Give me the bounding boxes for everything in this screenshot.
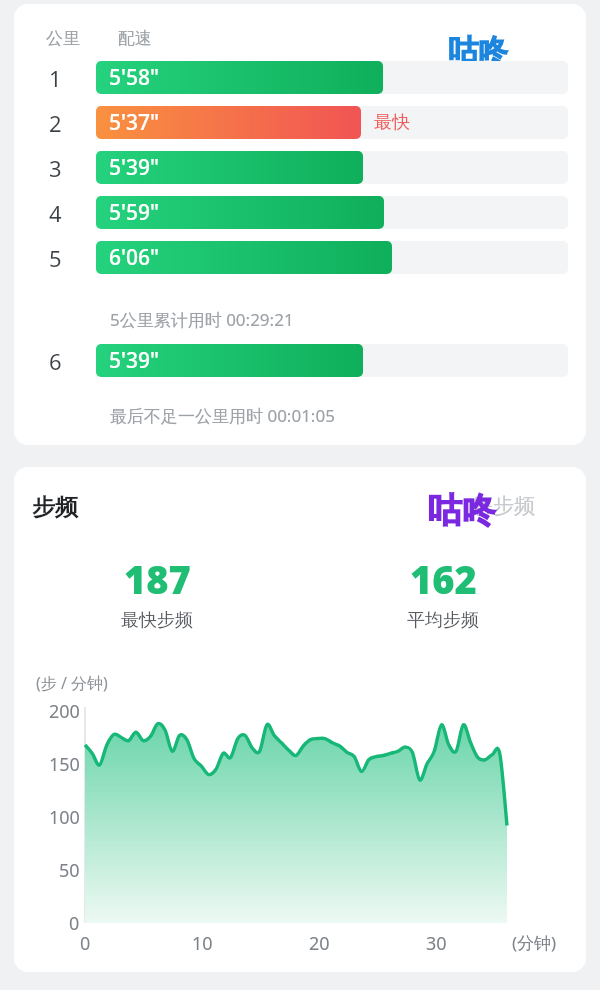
staticText: 2: [49, 108, 62, 138]
button[interactable]: 4: [14, 190, 586, 235]
button[interactable]: 3: [14, 145, 586, 190]
staticText: 咕咚: [448, 32, 508, 70]
button[interactable]: 解步频: [472, 493, 535, 519]
staticText: 解步频: [472, 493, 535, 519]
staticText: 20: [309, 931, 330, 956]
staticText: 100: [49, 805, 80, 829]
staticText: 0: [69, 911, 80, 935]
staticText: 5'58": [109, 63, 160, 92]
button[interactable]: 187: [14, 553, 300, 632]
staticText: (分钟): [512, 931, 557, 954]
staticText: 150: [49, 752, 80, 776]
staticText: 步频: [32, 493, 78, 522]
button[interactable]: 2: [14, 100, 586, 145]
staticText: 6'06": [109, 243, 160, 272]
staticText: 5公里累计用时 00:29:21: [110, 308, 294, 331]
staticText: 162: [410, 553, 477, 605]
staticText: 最快步频: [121, 609, 193, 632]
staticText: 最快: [374, 111, 410, 134]
staticText: 0: [80, 931, 91, 956]
staticText: (步 / 分钟): [36, 672, 108, 694]
staticText: 5'39": [109, 346, 160, 375]
staticText: 50: [59, 858, 80, 882]
staticText: 咕咚: [428, 489, 496, 532]
button[interactable]: 162: [300, 553, 586, 632]
staticText: 200: [49, 699, 80, 723]
staticText: 5: [49, 243, 62, 273]
staticText: 5'37": [109, 108, 160, 137]
staticText: 187: [124, 553, 191, 605]
button[interactable]: 1: [14, 55, 586, 100]
other: Cadence over time chart: [14, 699, 586, 949]
button[interactable]: 6: [14, 338, 586, 383]
staticText: 5'39": [109, 153, 160, 182]
staticText: 3: [49, 153, 62, 183]
staticText: 4: [49, 198, 62, 228]
staticText: 配速: [118, 28, 152, 49]
button[interactable]: 5: [14, 235, 586, 280]
staticText: 10: [192, 931, 213, 956]
staticText: 5'59": [109, 198, 160, 227]
staticText: 1: [49, 63, 62, 93]
staticText: 6: [49, 346, 62, 376]
staticText: 公里: [46, 28, 80, 49]
staticText: 最后不足一公里用时 00:01:05: [110, 404, 335, 427]
staticText: 30: [426, 931, 447, 956]
staticText: 平均步频: [407, 609, 479, 632]
